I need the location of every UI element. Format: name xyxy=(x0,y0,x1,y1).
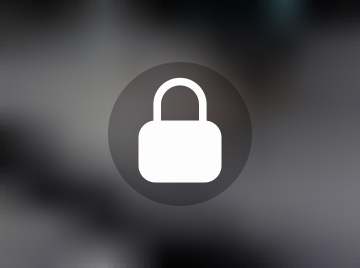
button[interactable]: Unlock xyxy=(0,0,360,268)
